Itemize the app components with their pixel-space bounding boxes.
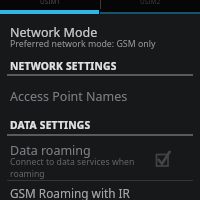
staticText: Data roaming	[10, 142, 91, 159]
button[interactable]: USIM2	[100, 0, 200, 14]
staticText: Network Mode	[10, 24, 98, 41]
staticText: GSM Roaming with IR	[10, 185, 130, 200]
button[interactable]: USIM1	[0, 0, 100, 14]
staticText: USIM2	[140, 0, 161, 6]
button[interactable]: Network Mode	[0, 16, 200, 56]
staticText: DATA SETTINGS	[10, 118, 91, 132]
staticText: NETWORK SETTINGS	[10, 59, 117, 73]
button[interactable]: Data roaming	[0, 139, 200, 180]
staticText: USIM1	[40, 0, 61, 6]
staticText: Access Point Names	[10, 88, 128, 105]
button[interactable]: GSM Roaming with IR	[0, 182, 200, 200]
staticText: Connect to data services when roaming	[10, 156, 135, 179]
button[interactable]: Access Point Names	[0, 80, 200, 114]
staticText: Preferred network mode: GSM only	[10, 38, 156, 50]
